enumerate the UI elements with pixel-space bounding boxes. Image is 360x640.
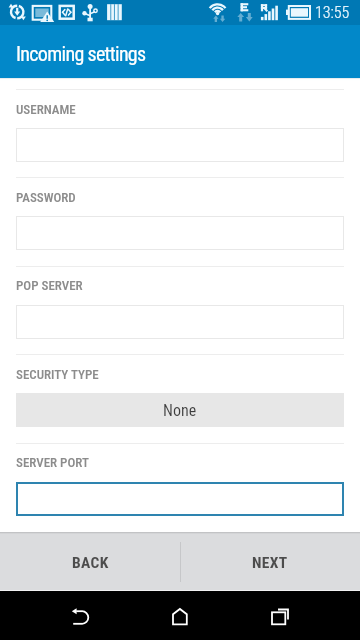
staticText: NEXT bbox=[252, 554, 288, 572]
button[interactable] bbox=[16, 482, 344, 516]
staticText: POP SERVER bbox=[16, 278, 83, 293]
button[interactable]: None bbox=[16, 393, 344, 427]
staticText: Incoming settings bbox=[16, 42, 146, 65]
button[interactable]: BACK bbox=[0, 532, 180, 591]
staticText: None bbox=[163, 401, 197, 420]
button[interactable]: NEXT bbox=[180, 532, 360, 591]
button[interactable]: Home bbox=[156, 599, 204, 631]
staticText: 13:55 bbox=[315, 3, 350, 22]
staticText: SECURITY TYPE bbox=[16, 367, 99, 382]
button[interactable]: Recent apps bbox=[256, 599, 304, 631]
button[interactable] bbox=[16, 305, 344, 339]
staticText: SERVER PORT bbox=[16, 455, 89, 470]
button[interactable] bbox=[16, 216, 344, 250]
button[interactable] bbox=[16, 128, 344, 162]
staticText: USERNAME bbox=[16, 102, 76, 117]
staticText: BACK bbox=[72, 554, 109, 572]
button[interactable]: Back bbox=[56, 599, 104, 631]
staticText: PASSWORD bbox=[16, 190, 76, 205]
